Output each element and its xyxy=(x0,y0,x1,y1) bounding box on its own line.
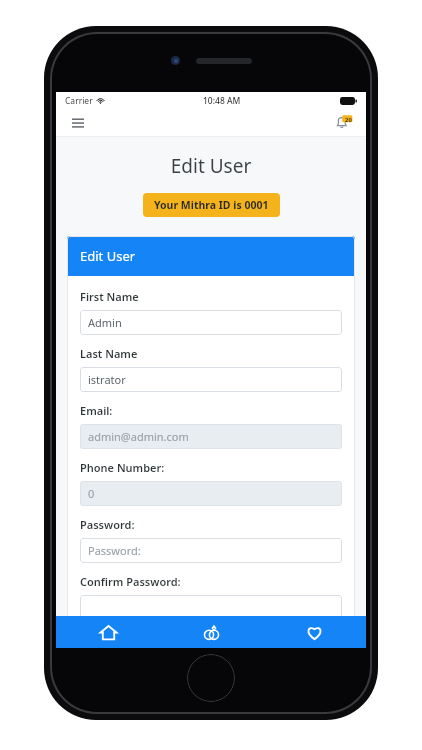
staticText: Edit User xyxy=(56,153,366,179)
staticText: Last Name xyxy=(80,346,138,361)
staticText: Your Mithra ID is 0001 xyxy=(154,198,269,212)
button[interactable]: Home xyxy=(56,616,160,648)
button[interactable]: Your Mithra ID is 0001 xyxy=(143,193,280,217)
staticText: Email: xyxy=(80,403,113,418)
staticText: First Name xyxy=(80,289,139,304)
staticText: Edit User xyxy=(80,247,136,265)
button[interactable]: Menu xyxy=(68,113,88,133)
button[interactable]: admin@admin.com xyxy=(80,424,342,449)
staticText: Phone Number: xyxy=(80,460,165,475)
staticText: admin@admin.com xyxy=(88,429,189,444)
staticText: Password: xyxy=(80,517,135,532)
button[interactable]: 0 xyxy=(80,481,342,506)
staticText: 20 xyxy=(345,116,352,124)
button[interactable]: Notifications xyxy=(332,111,356,135)
button[interactable]: Edit User xyxy=(67,236,355,276)
staticText: Password: xyxy=(88,543,141,558)
button[interactable]: istrator xyxy=(80,367,342,392)
button[interactable] xyxy=(80,595,342,620)
staticText: Carrier xyxy=(65,95,93,107)
staticText: istrator xyxy=(88,372,126,387)
button[interactable]: Admin xyxy=(80,310,342,335)
button[interactable]: Favourites xyxy=(263,616,366,648)
staticText: 10:48 AM xyxy=(203,95,241,107)
staticText: Admin xyxy=(88,315,122,330)
button[interactable]: Password: xyxy=(80,538,342,563)
staticText: Confirm Password: xyxy=(80,574,181,589)
staticText: 0 xyxy=(88,486,95,501)
button[interactable]: Matches xyxy=(160,616,263,648)
